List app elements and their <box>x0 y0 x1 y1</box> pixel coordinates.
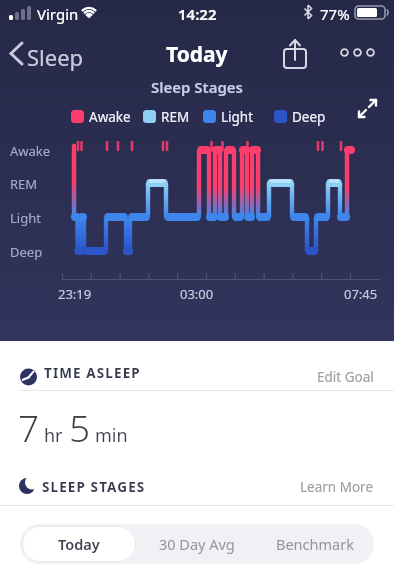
button[interactable]: Today <box>22 526 136 562</box>
staticText: 7 <box>18 402 40 452</box>
button[interactable]: 30 Day Avg <box>138 524 256 564</box>
staticText: hr <box>44 423 63 448</box>
staticText: REM <box>161 108 190 126</box>
staticText: Virgin <box>37 4 79 24</box>
button[interactable] <box>336 38 378 68</box>
staticText: Sleep Stages <box>151 77 244 97</box>
staticText: 03:00 <box>180 285 214 303</box>
staticText: REM <box>10 175 38 193</box>
button[interactable]: Benchmark <box>256 524 374 564</box>
staticText: SLEEP STAGES <box>42 478 146 496</box>
staticText: Light <box>10 209 41 227</box>
button[interactable]: Edit Goal <box>311 362 380 392</box>
button[interactable] <box>278 36 314 72</box>
staticText: Learn More <box>300 478 374 496</box>
staticText: 5 <box>69 402 91 452</box>
staticText: Awake <box>10 142 51 160</box>
staticText: Today <box>58 534 100 554</box>
button[interactable]: Learn More <box>294 472 380 502</box>
staticText: Sleep <box>27 42 84 72</box>
staticText: min <box>95 423 128 448</box>
button[interactable]: Sleep <box>6 40 96 70</box>
staticText: Today <box>166 40 228 69</box>
staticText: 07:45 <box>344 285 378 303</box>
staticText: Deep <box>292 108 326 126</box>
staticText: Awake <box>89 108 131 126</box>
staticText: 77% <box>320 4 350 24</box>
staticText: TIME ASLEEP <box>44 364 141 382</box>
staticText: Benchmark <box>276 534 354 554</box>
staticText: Deep <box>10 243 43 261</box>
staticText: 30 Day Avg <box>159 534 235 554</box>
staticText: Light <box>221 108 254 126</box>
staticText: Edit Goal <box>317 368 374 386</box>
staticText: 23:19 <box>58 285 92 303</box>
button[interactable] <box>352 92 384 124</box>
staticText: 14:22 <box>178 4 217 24</box>
